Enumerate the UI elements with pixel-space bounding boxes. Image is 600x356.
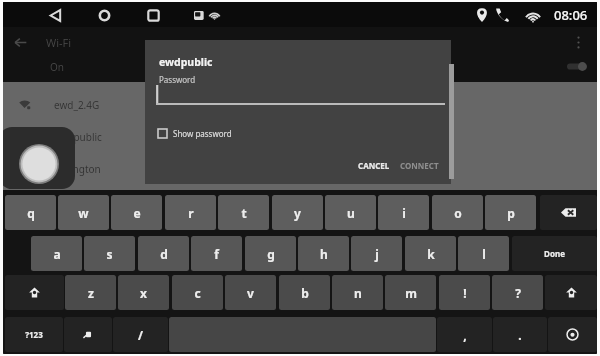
button[interactable]: Shift	[5, 275, 64, 310]
button[interactable]: x	[118, 275, 169, 310]
staticText: Done	[544, 248, 565, 259]
button[interactable]: g	[245, 236, 296, 271]
staticText: f	[214, 246, 219, 262]
button[interactable]: Recent apps	[140, 6, 166, 25]
staticText: ,	[463, 327, 467, 343]
button[interactable]: i	[378, 195, 429, 230]
staticText: t	[241, 205, 247, 221]
staticText: n	[354, 285, 362, 301]
staticText: p	[507, 205, 515, 221]
staticText: d	[160, 246, 168, 262]
button[interactable]: t	[218, 195, 269, 230]
button[interactable]: o	[432, 195, 483, 230]
button[interactable]: Screenshot	[190, 7, 208, 24]
staticText: CONNECT	[400, 160, 439, 171]
staticText: ewd_2.4G	[54, 98, 100, 112]
staticText: j	[375, 246, 379, 262]
button[interactable]: p	[485, 195, 536, 230]
staticText: g	[267, 246, 275, 262]
staticText: z	[88, 285, 94, 301]
staticText: o	[454, 205, 462, 221]
staticText: k	[427, 246, 435, 262]
button[interactable]: Navigate up	[11, 33, 29, 51]
staticText: y	[294, 205, 301, 221]
button[interactable]: u	[325, 195, 376, 230]
button[interactable]: Emoji	[548, 317, 597, 352]
button[interactable]: f	[191, 236, 242, 271]
button[interactable]: w	[58, 195, 109, 230]
staticText: i	[402, 205, 406, 221]
button[interactable]: !	[439, 275, 490, 310]
button[interactable]: l	[458, 236, 509, 271]
staticText: v	[247, 285, 254, 301]
button[interactable]: Back	[42, 6, 68, 25]
staticText: Wi-Fi	[46, 35, 72, 50]
button[interactable]: s	[84, 236, 135, 271]
button[interactable]: n	[332, 275, 383, 310]
button[interactable]: z	[65, 275, 116, 310]
staticText: Show password	[173, 128, 232, 139]
button[interactable]: Shift	[545, 275, 597, 310]
staticText: ewdpublic	[159, 55, 213, 69]
button[interactable]: v	[225, 275, 276, 310]
staticText: Password	[159, 74, 196, 85]
staticText: !	[463, 285, 467, 301]
button[interactable]: q	[5, 195, 56, 230]
button[interactable]: y	[272, 195, 323, 230]
button[interactable]: ewd_2.4G	[3, 90, 597, 120]
button[interactable]: /	[113, 317, 168, 352]
staticText: h	[320, 246, 328, 262]
button[interactable]: Delete	[540, 195, 597, 230]
button[interactable]: Change language	[64, 317, 112, 352]
staticText: l	[482, 246, 486, 262]
button[interactable]: CONNECT	[394, 156, 445, 175]
staticText: m	[405, 285, 417, 301]
button[interactable]: ,	[437, 317, 492, 352]
staticText: ?123	[25, 329, 43, 340]
button[interactable]: Wi-Fi on/off	[565, 59, 589, 73]
staticText: 08:06	[554, 6, 588, 24]
staticText: u	[347, 205, 355, 221]
staticText: ?	[515, 285, 521, 301]
button[interactable]: More options	[571, 32, 585, 52]
staticText: x	[140, 285, 147, 301]
button[interactable]: r	[165, 195, 216, 230]
button[interactable]: CANCEL	[352, 156, 396, 175]
button[interactable]: ?123	[5, 317, 63, 352]
button[interactable]: m	[385, 275, 436, 310]
button[interactable]: c	[172, 275, 223, 310]
button[interactable]: .	[493, 317, 547, 352]
staticText: CANCEL	[358, 160, 390, 171]
button[interactable]: a	[31, 236, 82, 271]
staticText: r	[188, 205, 194, 221]
staticText: w	[78, 205, 89, 221]
staticText: .	[518, 327, 522, 343]
button[interactable]: h	[298, 236, 349, 271]
button[interactable]: d	[138, 236, 189, 271]
button[interactable]: b	[279, 275, 330, 310]
staticText: s	[106, 246, 113, 262]
button[interactable]: ewdpublic	[3, 122, 597, 152]
button[interactable]: Home	[91, 6, 117, 25]
button[interactable]: Lexington	[3, 154, 597, 184]
staticText: e	[133, 205, 141, 221]
staticText: Lexington	[54, 162, 101, 176]
button[interactable]: Cast screen	[206, 7, 222, 23]
staticText: c	[194, 285, 201, 301]
button[interactable]: j	[351, 236, 402, 271]
staticText: a	[53, 246, 61, 262]
staticText: b	[301, 285, 309, 301]
staticText: On	[50, 60, 64, 74]
staticText: ewdpublic	[54, 130, 102, 144]
button[interactable]: k	[405, 236, 456, 271]
staticText: /	[138, 327, 143, 343]
button[interactable]: Done	[512, 236, 597, 271]
button[interactable]: e	[111, 195, 162, 230]
staticText: q	[27, 205, 35, 221]
button[interactable]: ?	[492, 275, 543, 310]
button[interactable]: Show password	[158, 128, 232, 139]
